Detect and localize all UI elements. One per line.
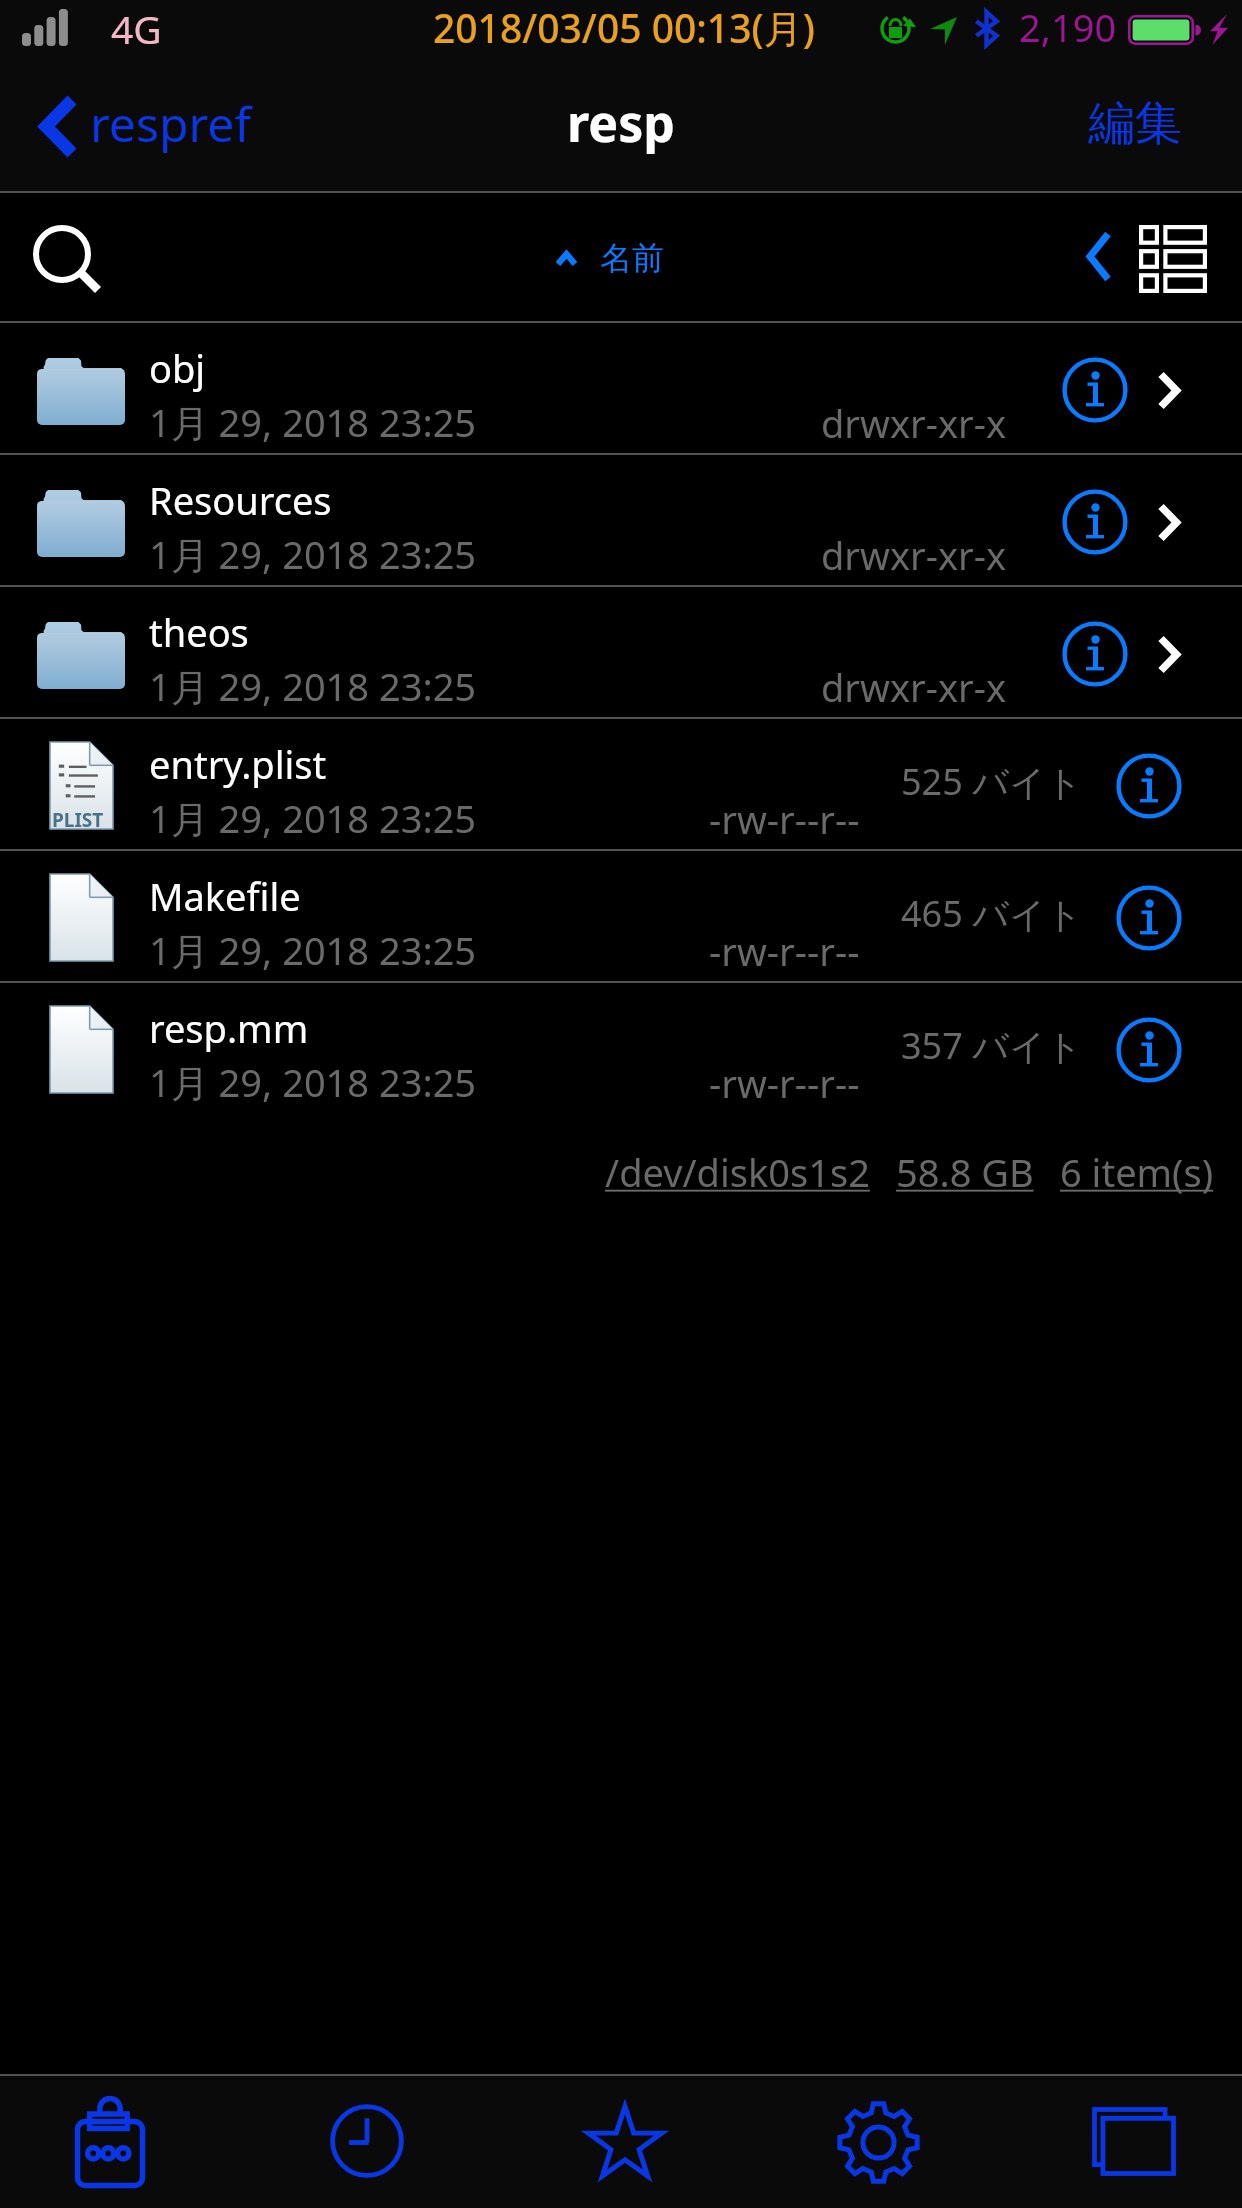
staticText: -rw-r--r-- — [709, 793, 860, 845]
staticText: Resources — [149, 474, 332, 526]
button[interactable]: resp.mm — [0, 983, 1242, 1113]
staticText: Makefile — [149, 870, 301, 922]
staticText: 1月 29, 2018 23:25 — [149, 396, 477, 448]
button[interactable]: Open folder — [1140, 619, 1206, 685]
staticText: 1月 29, 2018 23:25 — [149, 1056, 477, 1108]
staticText: 465 バイト — [901, 889, 1083, 938]
button[interactable]: Info — [1062, 357, 1128, 423]
staticText: 編集 — [1088, 94, 1182, 153]
button[interactable]: theos — [0, 587, 1242, 717]
staticText: resp — [567, 89, 675, 157]
staticText: drwxr-xr-x — [821, 397, 1007, 449]
staticText: PLIST — [52, 807, 104, 833]
button[interactable]: Windows — [1085, 2096, 1183, 2190]
staticText: resp.mm — [149, 1002, 309, 1054]
button[interactable]: Clipboard — [59, 2096, 157, 2190]
button[interactable]: Open folder — [1140, 487, 1206, 553]
staticText: 2,190 — [1019, 1, 1117, 53]
staticText: -rw-r--r-- — [709, 1057, 860, 1109]
button[interactable]: Info — [1116, 1017, 1182, 1083]
button[interactable]: Info — [1116, 753, 1182, 819]
button[interactable]: Open folder — [1140, 355, 1206, 421]
staticText: 1月 29, 2018 23:25 — [149, 792, 477, 844]
button[interactable]: View mode — [1127, 193, 1242, 323]
staticText: obj — [149, 342, 206, 394]
button[interactable]: Recent — [317, 2096, 415, 2190]
staticText: 58.8 GB — [896, 1146, 1034, 1198]
staticText: 525 バイト — [901, 757, 1083, 806]
button[interactable]: Info — [1062, 489, 1128, 555]
button[interactable]: 編集 — [1062, 68, 1242, 193]
staticText: 名前 — [600, 238, 664, 278]
button[interactable]: Favorites — [573, 2096, 671, 2190]
button[interactable]: Back — [1071, 193, 1127, 323]
button[interactable]: obj — [0, 323, 1242, 453]
staticText: 6 item(s) — [1060, 1146, 1214, 1198]
staticText: 357 バイト — [901, 1021, 1083, 1070]
staticText: 2018/03/05 00:13(月) — [433, 1, 815, 54]
button[interactable]: Search — [0, 193, 128, 323]
staticText: drwxr-xr-x — [821, 529, 1007, 581]
button[interactable]: 名前 — [542, 193, 678, 323]
staticText: 1月 29, 2018 23:25 — [149, 528, 477, 580]
button[interactable]: Info — [1062, 621, 1128, 687]
button[interactable]: Settings — [829, 2096, 927, 2190]
button[interactable]: Resources — [0, 455, 1242, 585]
staticText: -rw-r--r-- — [709, 925, 860, 977]
staticText: 1月 29, 2018 23:25 — [149, 660, 477, 712]
staticText: 1月 29, 2018 23:25 — [149, 924, 477, 976]
staticText: theos — [149, 606, 249, 658]
button[interactable]: Makefile — [0, 851, 1242, 981]
staticText: /dev/disk0s1s2 — [605, 1146, 870, 1198]
staticText: entry.plist — [149, 738, 327, 790]
staticText: 4G — [111, 2, 162, 55]
button[interactable]: PLIST — [0, 719, 1242, 849]
button[interactable]: Info — [1116, 885, 1182, 951]
button[interactable]: respref — [0, 68, 447, 193]
staticText: respref — [90, 91, 251, 156]
staticText: drwxr-xr-x — [821, 661, 1007, 713]
